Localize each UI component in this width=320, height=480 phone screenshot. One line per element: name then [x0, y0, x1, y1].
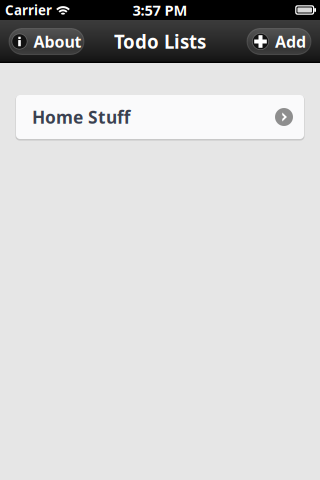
staticText: 3:57 PM — [132, 0, 187, 20]
button[interactable]: About — [9, 28, 84, 54]
button[interactable]: Home Stuff — [16, 95, 304, 139]
staticText: Todo Lists — [114, 29, 206, 54]
button[interactable]: Add — [247, 28, 311, 54]
staticText: Add — [275, 31, 306, 52]
staticText: Carrier — [5, 1, 52, 19]
staticText: Home Stuff — [32, 105, 130, 128]
staticText: About — [33, 31, 81, 52]
